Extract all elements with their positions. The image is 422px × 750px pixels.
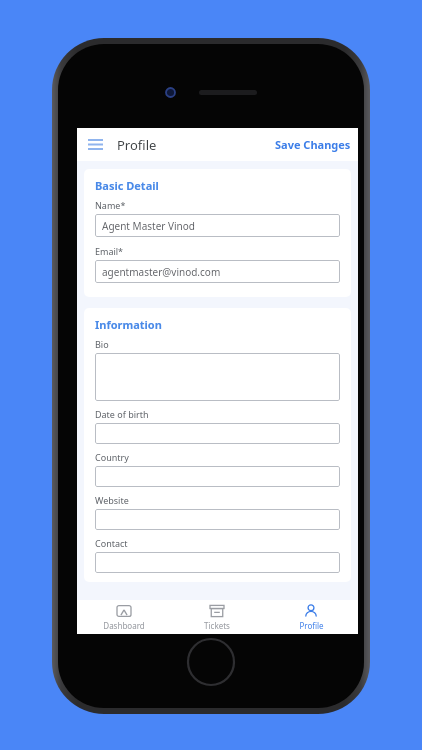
button[interactable]: Profile — [264, 600, 358, 634]
staticText: Contact — [95, 537, 128, 549]
staticText: Website — [95, 494, 129, 506]
staticText: Basic Detail — [95, 178, 159, 193]
staticText: Information — [95, 317, 162, 332]
button[interactable]: Tickets — [170, 600, 264, 634]
button[interactable]: Dashboard — [77, 600, 170, 634]
button[interactable]: agentmaster@vinod.com — [95, 260, 340, 283]
staticText: Bio — [95, 338, 109, 350]
staticText: agentmaster@vinod.com — [102, 265, 221, 279]
staticText: Date of birth — [95, 408, 149, 420]
staticText: Email* — [95, 245, 124, 257]
staticText: Profile — [117, 136, 157, 154]
staticText: Tickets — [204, 620, 230, 631]
button[interactable] — [95, 552, 340, 573]
button[interactable] — [95, 509, 340, 530]
button[interactable]: Open navigation menu — [82, 132, 109, 157]
button[interactable] — [95, 353, 340, 401]
staticText: Country — [95, 451, 129, 463]
staticText: Name* — [95, 199, 126, 211]
button[interactable] — [95, 423, 340, 444]
staticText: Save Changes — [275, 137, 351, 152]
staticText: Profile — [299, 620, 324, 631]
staticText: Agent Master Vinod — [102, 219, 195, 233]
button[interactable] — [95, 466, 340, 487]
staticText: Dashboard — [103, 620, 145, 631]
button[interactable]: Save Changes — [268, 130, 358, 159]
button[interactable]: Agent Master Vinod — [95, 214, 340, 237]
